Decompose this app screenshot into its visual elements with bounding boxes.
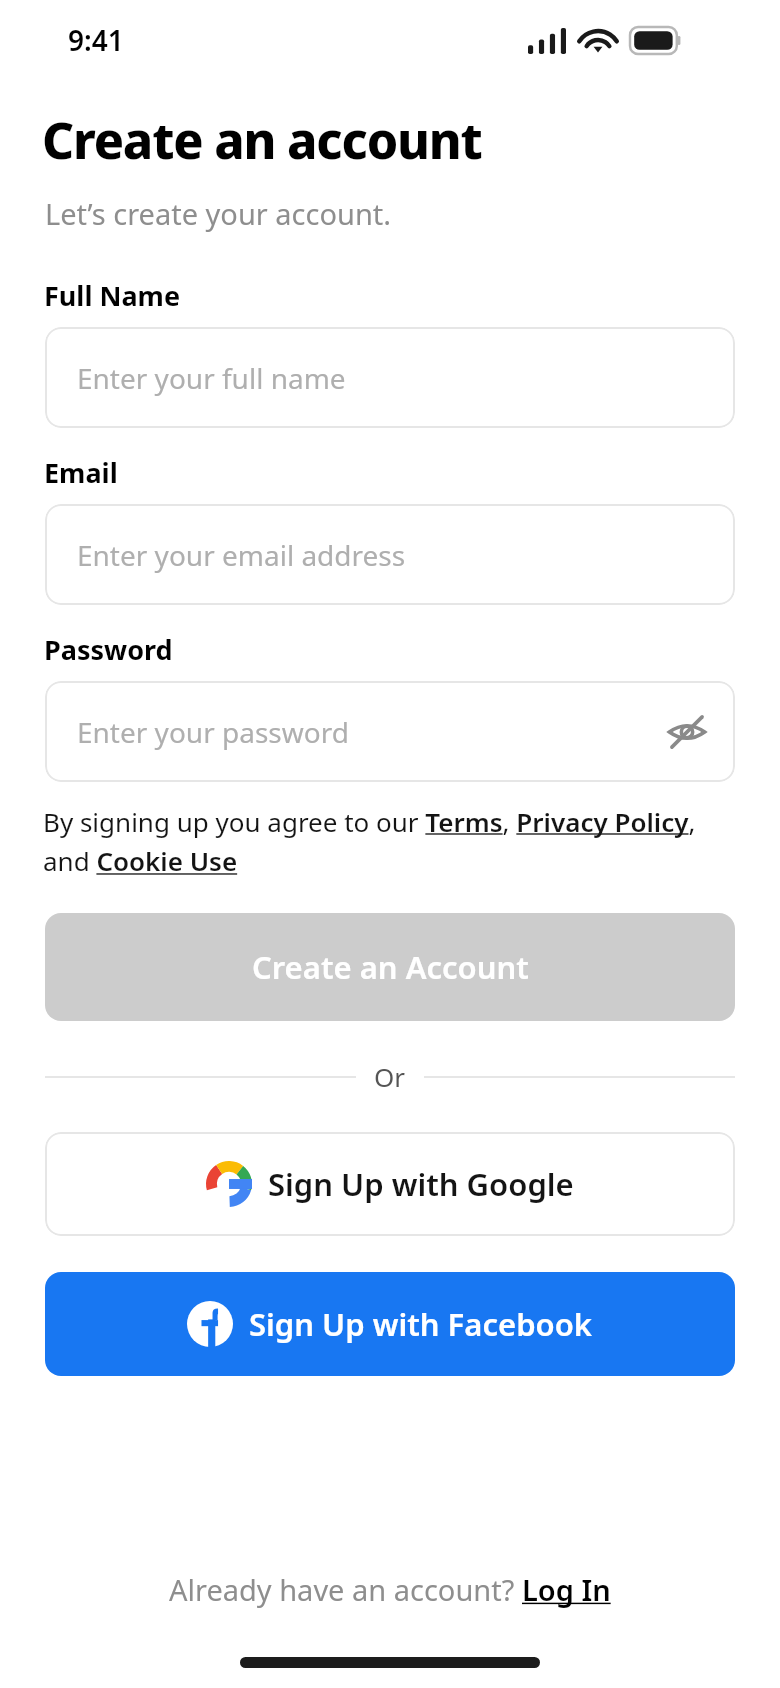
staticText: Email bbox=[44, 454, 118, 491]
staticText: Or bbox=[374, 1059, 406, 1094]
button[interactable]: Enter your password bbox=[45, 681, 735, 782]
button[interactable]: Show password bbox=[661, 706, 713, 758]
staticText: Create an Account bbox=[252, 946, 529, 988]
staticText: Password bbox=[44, 631, 173, 668]
staticText: Enter your full name bbox=[77, 359, 346, 397]
staticText: Let’s create your account. bbox=[45, 194, 392, 233]
staticText: Enter your email address bbox=[77, 536, 406, 574]
button[interactable]: Log In bbox=[522, 1570, 611, 1609]
button[interactable]: Sign Up with Facebook bbox=[45, 1272, 735, 1376]
staticText: Enter your password bbox=[77, 713, 349, 751]
staticText: Sign Up with Facebook bbox=[249, 1303, 593, 1345]
staticText: Full Name bbox=[44, 277, 181, 314]
button[interactable]: Enter your email address bbox=[45, 504, 735, 605]
staticText: Already have an account? bbox=[169, 1570, 522, 1609]
button[interactable]: Create an Account bbox=[45, 913, 735, 1021]
staticText: Create an account bbox=[42, 106, 482, 174]
button[interactable]: Sign Up with Google bbox=[45, 1132, 735, 1236]
staticText: By signing up you agree to our Terms, Pr… bbox=[43, 804, 708, 879]
staticText: Sign Up with Google bbox=[268, 1163, 574, 1205]
staticText: 9:41 bbox=[68, 21, 124, 59]
staticText: Log In bbox=[522, 1570, 611, 1609]
button[interactable]: Enter your full name bbox=[45, 327, 735, 428]
